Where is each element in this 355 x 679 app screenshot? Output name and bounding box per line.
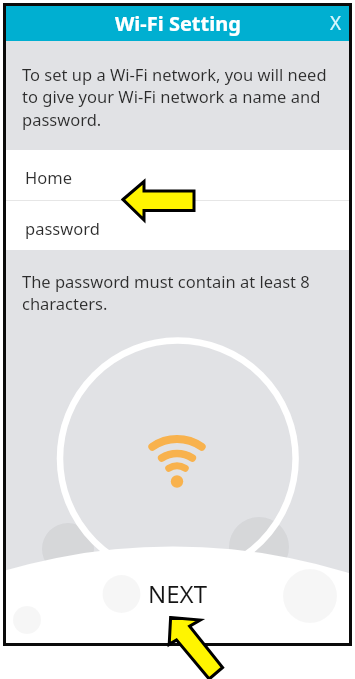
staticText: Home: [25, 166, 72, 188]
button[interactable]: NEXT: [148, 577, 207, 610]
button[interactable]: Home: [6, 150, 349, 200]
staticText: To set up a Wi-Fi network, you will need…: [22, 63, 340, 130]
staticText: Wi-Fi Setting: [115, 10, 241, 37]
staticText: password: [25, 217, 100, 239]
staticText: The password must contain at least 8 cha…: [22, 270, 340, 314]
staticText: X: [330, 10, 342, 34]
button[interactable]: password: [6, 201, 349, 250]
button[interactable]: Close: [324, 10, 348, 34]
staticText: NEXT: [148, 577, 207, 610]
